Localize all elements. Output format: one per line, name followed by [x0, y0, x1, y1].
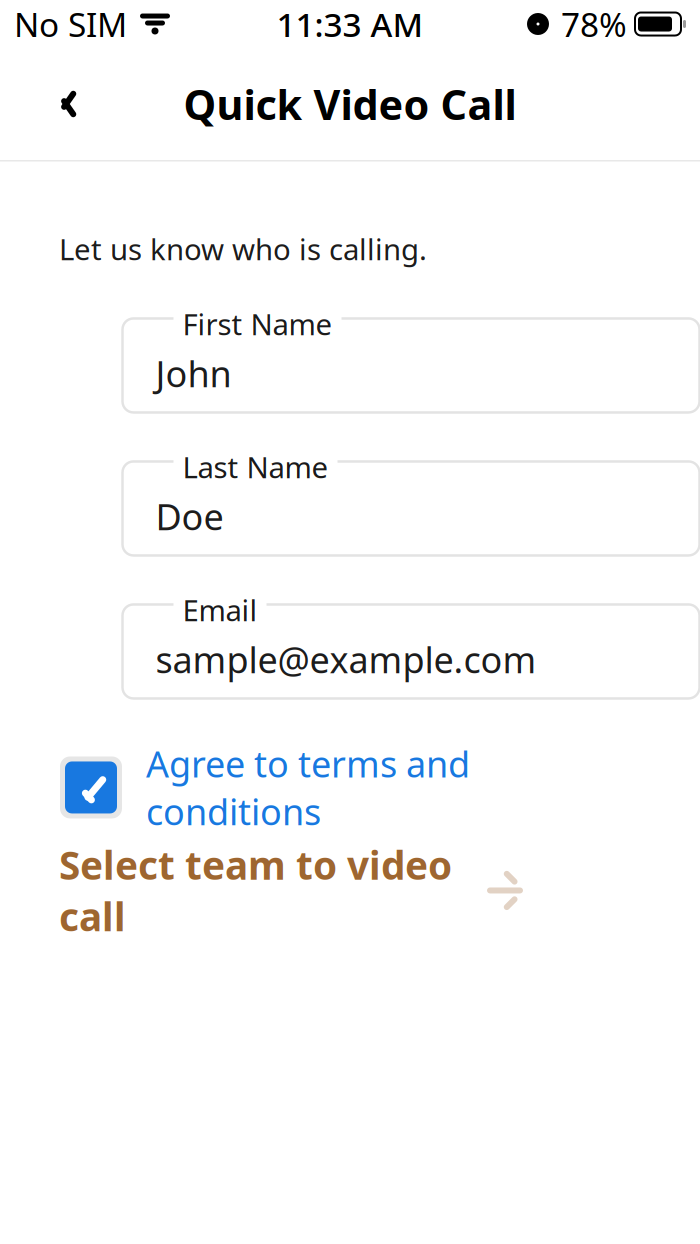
staticText: Agree to terms and conditions	[146, 740, 470, 835]
button[interactable]: Agree to terms and conditions	[60, 756, 640, 818]
button[interactable]: Back	[32, 76, 88, 132]
button[interactable]: Select team to video call	[59, 862, 579, 918]
staticText: No SIM	[14, 2, 127, 46]
staticText: First Name	[182, 304, 332, 343]
staticText: Email	[182, 590, 257, 629]
staticText: Quick Video Call	[183, 77, 516, 131]
staticText: Let us know who is calling.	[59, 229, 427, 268]
staticText: 11:33 AM	[276, 2, 423, 46]
staticText: sample@example.com	[155, 635, 536, 683]
staticText: John	[155, 349, 231, 397]
staticText: Doe	[155, 492, 223, 540]
staticText: Last Name	[182, 447, 328, 486]
staticText: Select team to video call	[59, 839, 452, 942]
staticText: 78%	[561, 2, 627, 46]
